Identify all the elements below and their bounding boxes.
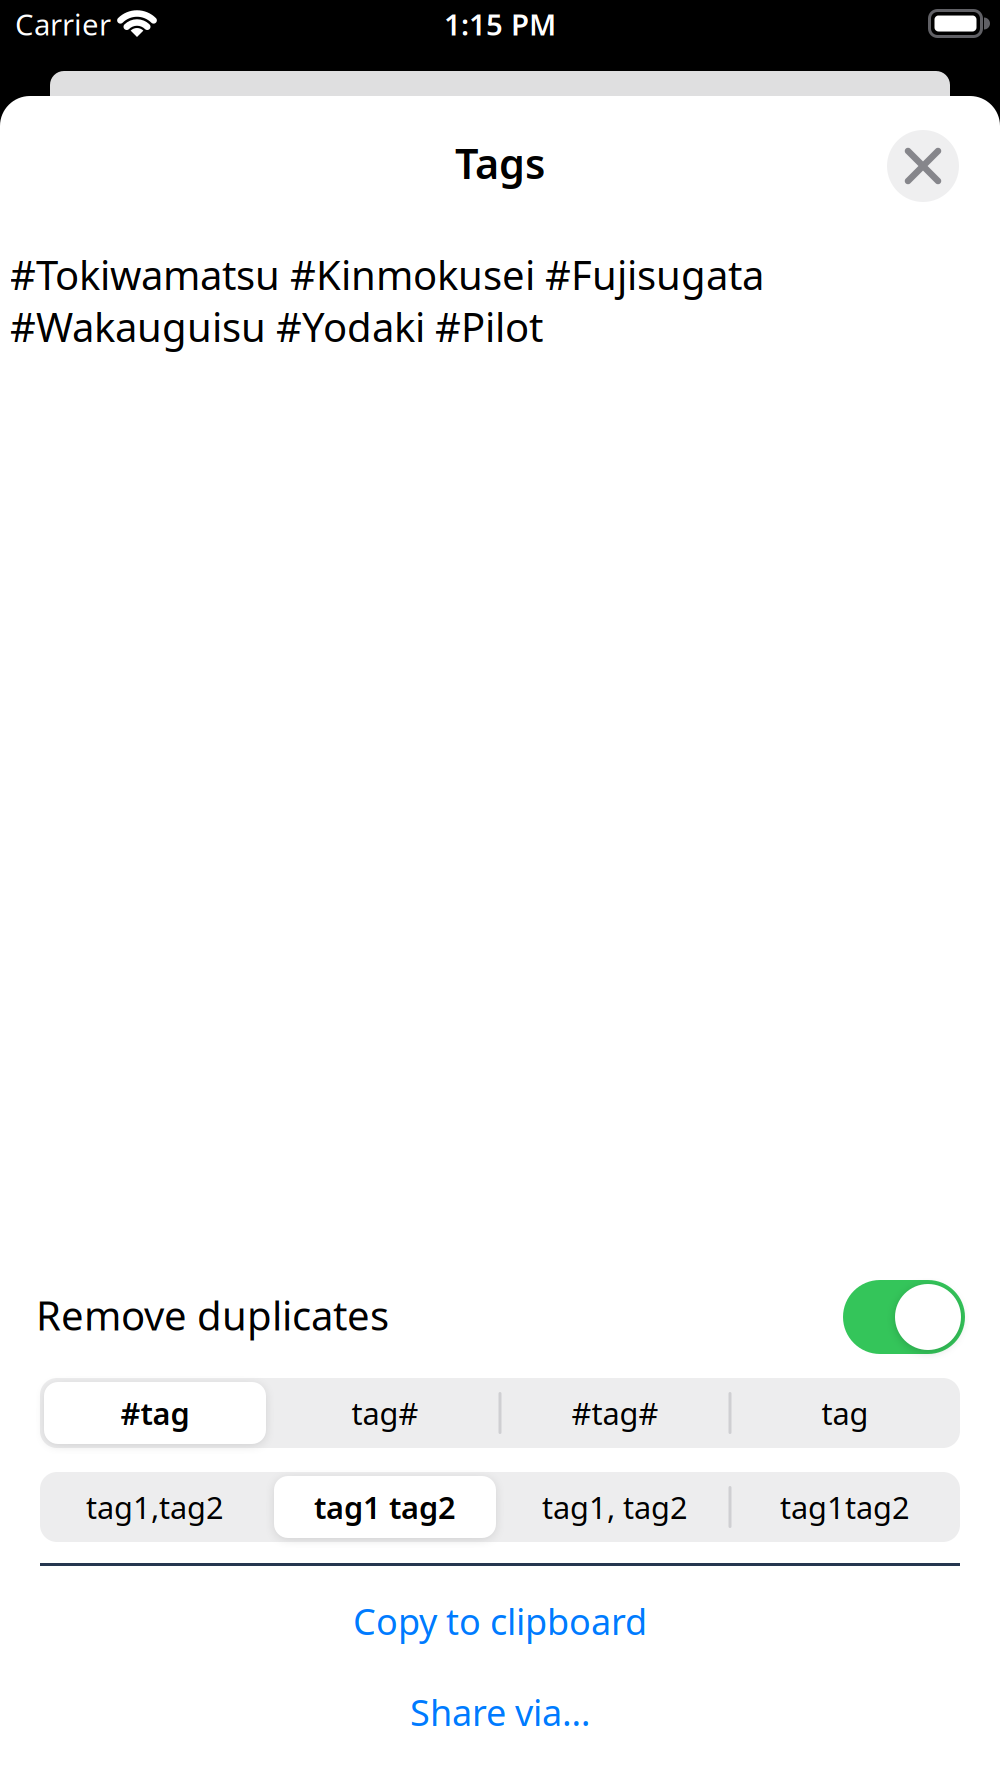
staticText: tag1tag2 xyxy=(780,1487,910,1527)
staticText: Share via… xyxy=(410,1688,590,1736)
staticText: tag1, tag2 xyxy=(542,1487,688,1527)
staticText: #Wakauguisu #Yodaki #Pilot xyxy=(10,300,543,353)
staticText: tag xyxy=(821,1393,868,1433)
button[interactable]: tag1, tag2 xyxy=(500,1472,730,1542)
button[interactable]: #tag xyxy=(40,1378,270,1448)
staticText: Tags xyxy=(455,136,545,190)
button[interactable]: tag1 tag2 xyxy=(270,1472,500,1542)
button[interactable]: tag xyxy=(730,1378,960,1448)
button[interactable]: Close xyxy=(887,130,959,202)
staticText: 1:15 PM xyxy=(444,4,556,43)
button[interactable]: tag1,tag2 xyxy=(40,1472,270,1542)
staticText: Remove duplicates xyxy=(36,1288,389,1341)
button[interactable]: tag1tag2 xyxy=(730,1472,960,1542)
staticText: #tag# xyxy=(571,1393,658,1433)
button[interactable]: #tag# xyxy=(500,1378,730,1448)
button[interactable]: Share via… xyxy=(390,1678,610,1746)
button[interactable]: Remove duplicates xyxy=(843,1280,965,1354)
staticText: Carrier xyxy=(15,4,111,43)
button[interactable]: tag# xyxy=(270,1378,500,1448)
staticText: tag# xyxy=(351,1393,418,1433)
staticText: #Tokiwamatsu #Kinmokusei #Fujisugata xyxy=(10,248,764,301)
button[interactable]: Copy to clipboard xyxy=(333,1587,667,1655)
staticText: #tag xyxy=(120,1393,189,1433)
staticText: tag1 tag2 xyxy=(314,1487,456,1527)
staticText: tag1,tag2 xyxy=(86,1487,224,1527)
staticText: Copy to clipboard xyxy=(353,1597,647,1645)
